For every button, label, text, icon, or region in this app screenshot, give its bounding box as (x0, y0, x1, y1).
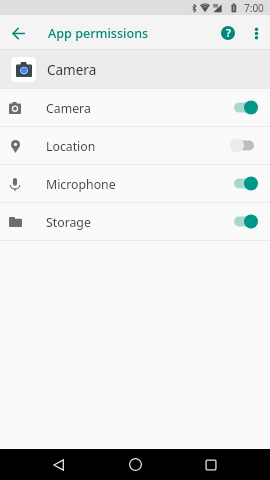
staticText: Microphone (46, 176, 116, 193)
button[interactable]: Camera (0, 89, 270, 126)
button[interactable]: More options (244, 15, 268, 49)
button[interactable]: Location (0, 127, 270, 164)
staticText: Storage (46, 214, 91, 231)
staticText: ? (226, 26, 231, 40)
staticText: Camera (46, 100, 91, 117)
button[interactable]: Help (211, 15, 244, 49)
staticText: 7:00 (244, 1, 264, 15)
staticText: Location (46, 138, 96, 155)
staticText: App permissions (48, 25, 149, 42)
button[interactable]: Home (97, 449, 173, 480)
staticText: Camera (47, 61, 97, 79)
button[interactable]: Recent apps (173, 449, 249, 480)
button[interactable]: Camera (0, 50, 270, 88)
button[interactable]: Back (21, 449, 97, 480)
button[interactable]: Microphone (0, 165, 270, 202)
button[interactable]: Storage (0, 203, 270, 240)
button[interactable]: Navigate up (0, 15, 37, 49)
